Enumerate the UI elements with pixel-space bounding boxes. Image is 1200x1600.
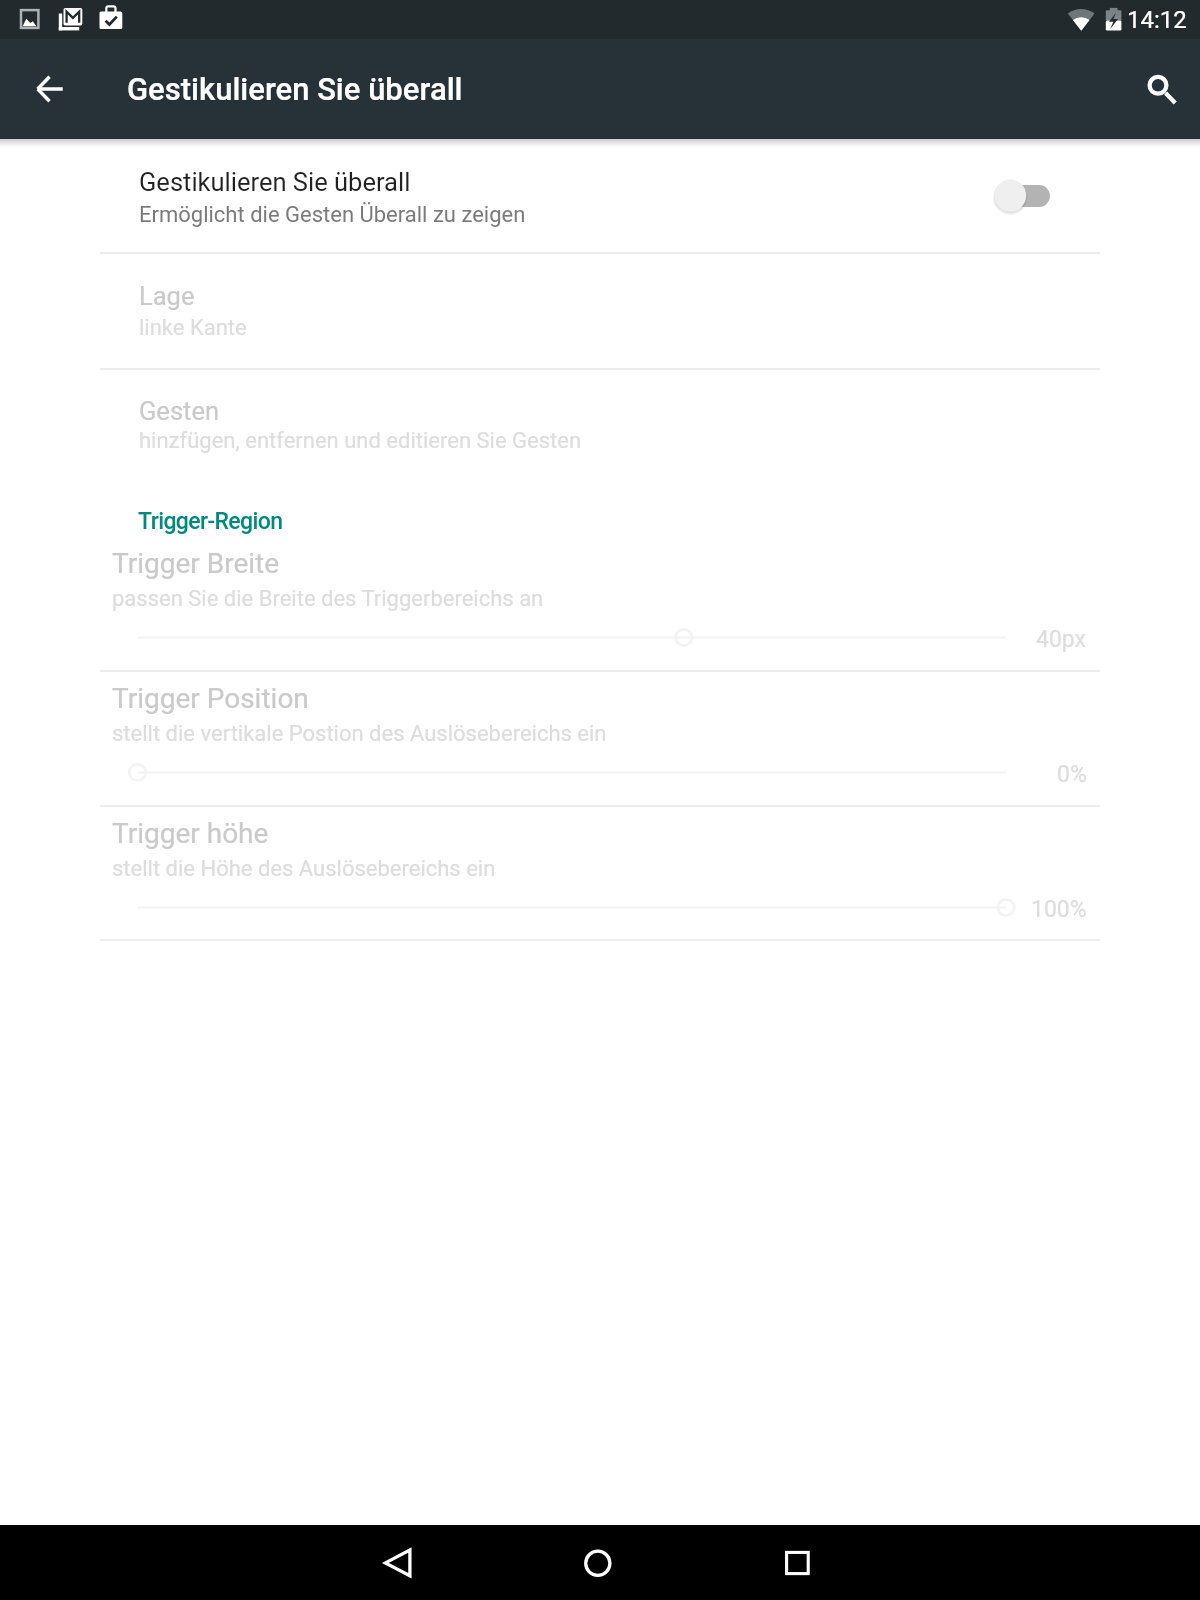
button[interactable]: Lage [0,254,1200,368]
staticText: 0% [1057,761,1087,788]
staticText: Ermöglicht die Gesten Überall zu zeigen [139,202,526,228]
staticText: 100% [1031,896,1087,923]
staticText: Gesten [139,396,219,426]
staticText: Trigger höhe [112,817,269,850]
button[interactable]: Home [558,1525,638,1600]
staticText: 14:12 [1127,6,1187,34]
staticText: 40px [1036,626,1087,653]
button[interactable]: Trigger höhe [0,807,1200,940]
button[interactable]: Toggle [981,160,1053,232]
staticText: Trigger Breite [112,547,280,580]
staticText: passen Sie die Breite des Triggerbereich… [112,586,544,612]
button[interactable]: Recent apps [757,1525,837,1600]
staticText: Lage [139,281,195,311]
staticText: stellt die Höhe des Auslösebereichs ein [112,856,496,882]
staticText: Gestikulieren Sie überall [127,71,463,107]
button[interactable]: Search [1122,53,1194,125]
staticText: Gestikulieren Sie überall [139,167,411,197]
button[interactable]: Trigger Breite [0,537,1200,670]
staticText: Trigger-Region [138,508,283,535]
staticText: hinzfügen, entfernen und editieren Sie G… [139,428,582,454]
button[interactable]: Gestikulieren Sie überall [0,140,1200,252]
staticText: Trigger Position [112,682,309,715]
button[interactable]: Gesten [0,370,1200,484]
button[interactable]: Back [14,53,86,125]
staticText: stellt die vertikale Postion des Auslöse… [112,721,607,747]
button[interactable]: Trigger Position [0,672,1200,805]
button[interactable]: Back [360,1525,440,1600]
staticText: linke Kante [139,315,247,341]
